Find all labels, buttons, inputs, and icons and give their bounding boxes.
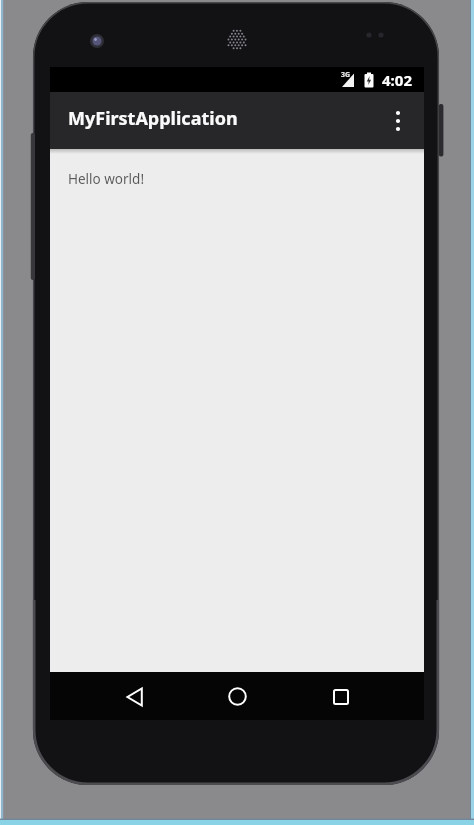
- button[interactable]: [321, 673, 361, 720]
- staticText: Hello world!: [68, 170, 145, 188]
- button[interactable]: [115, 673, 155, 720]
- staticText: 3G: [341, 70, 351, 80]
- button[interactable]: [381, 92, 414, 149]
- staticText: MyFirstApplication: [68, 106, 238, 131]
- button[interactable]: [217, 673, 257, 720]
- staticText: 4:02: [382, 70, 412, 90]
